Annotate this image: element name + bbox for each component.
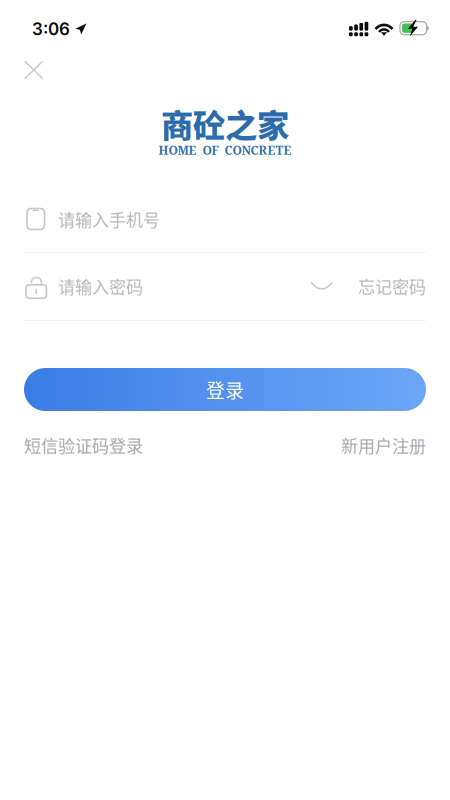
staticText: 登录 (206, 376, 244, 403)
button[interactable]: 新用户注册 (341, 433, 426, 457)
staticText: 新用户注册 (341, 433, 426, 457)
staticText: HOME OF CONCRETE (158, 142, 291, 158)
button[interactable]: Close (12, 49, 55, 90)
staticText: 商砼之家 (161, 100, 289, 147)
button[interactable]: 短信验证码登录 (24, 433, 143, 457)
button[interactable]: 忘记密码 (358, 274, 426, 298)
staticText: 忘记密码 (358, 274, 426, 298)
staticText: 3:06 (32, 19, 70, 39)
staticText: 请输入密码 (58, 274, 143, 298)
button[interactable]: Show password (302, 272, 339, 299)
staticText: 短信验证码登录 (24, 433, 143, 457)
button[interactable]: 登录 (24, 368, 426, 411)
staticText: 请输入手机号 (58, 207, 160, 231)
